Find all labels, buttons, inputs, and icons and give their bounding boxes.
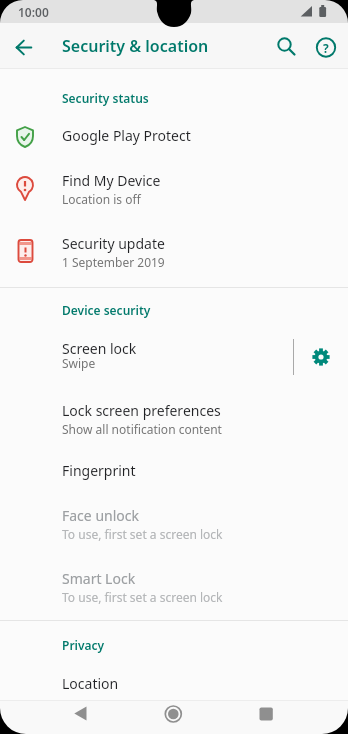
staticText: Lock screen preferences bbox=[62, 401, 221, 420]
button[interactable]: Screen lock bbox=[0, 330, 292, 388]
staticText: Location bbox=[62, 674, 119, 693]
staticText: Show all notification content bbox=[62, 421, 222, 437]
button[interactable] bbox=[12, 28, 54, 68]
button[interactable]: ? bbox=[307, 28, 347, 68]
staticText: Google Play Protect bbox=[62, 126, 191, 145]
staticText: ? bbox=[323, 40, 329, 56]
staticText: Fingerprint bbox=[62, 461, 136, 480]
button[interactable]: Security update bbox=[0, 223, 348, 287]
button[interactable] bbox=[55, 700, 113, 734]
button[interactable]: Lock screen preferences bbox=[0, 388, 348, 447]
button[interactable]: Fingerprint bbox=[0, 447, 348, 497]
staticText: Screen lock bbox=[62, 339, 137, 358]
staticText: Privacy bbox=[62, 637, 105, 653]
button[interactable] bbox=[145, 700, 203, 734]
staticText: 10:00 bbox=[18, 4, 49, 20]
staticText: Location is off bbox=[62, 191, 141, 207]
staticText: Face unlock bbox=[62, 506, 139, 525]
button[interactable] bbox=[293, 330, 348, 388]
button[interactable]: Face unlock bbox=[0, 497, 348, 557]
button[interactable]: Find My Device bbox=[0, 161, 348, 223]
staticText: Security update bbox=[62, 234, 165, 253]
button[interactable]: Google Play Protect bbox=[0, 113, 348, 161]
staticText: 1 September 2019 bbox=[62, 254, 165, 270]
staticText: Security & location bbox=[62, 35, 209, 57]
staticText: To use, first set a screen lock bbox=[62, 589, 223, 605]
button[interactable]: Smart Lock bbox=[0, 557, 348, 620]
button[interactable] bbox=[267, 28, 307, 68]
button[interactable] bbox=[233, 700, 291, 734]
button[interactable]: Location bbox=[0, 664, 348, 700]
staticText: Security status bbox=[62, 90, 149, 106]
staticText: Device security bbox=[62, 302, 151, 318]
staticText: To use, first set a screen lock bbox=[62, 526, 223, 542]
staticText: Smart Lock bbox=[62, 569, 136, 588]
staticText: Swipe bbox=[62, 355, 96, 371]
staticText: Find My Device bbox=[62, 171, 161, 190]
